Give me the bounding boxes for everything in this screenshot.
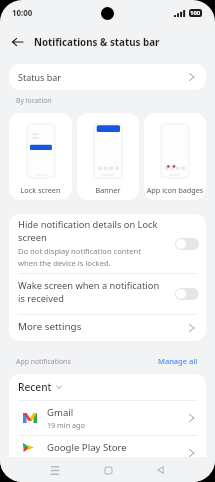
button[interactable]: Wake screen when a notification is recei… [9, 274, 206, 314]
button[interactable]: Home [92, 460, 125, 480]
button[interactable] [175, 238, 199, 250]
button[interactable]: Hide notification details on Lock screen [9, 214, 206, 273]
staticText: Status bar [18, 71, 62, 83]
button[interactable]: Recents [38, 460, 71, 480]
button[interactable]: Gmail [9, 401, 206, 435]
staticText: By location [16, 96, 52, 105]
staticText: App icon badges [144, 185, 206, 195]
button[interactable]: Lock screen [9, 113, 72, 200]
staticText: 19 min ago [47, 420, 85, 430]
button[interactable]: Google Play Store [9, 436, 206, 457]
staticText: Do not display notification content when… [18, 246, 160, 269]
staticText: Banner [77, 185, 139, 195]
staticText: Google Play Store [47, 441, 127, 454]
button[interactable]: Banner [77, 113, 139, 200]
staticText: Wake screen when a notification is recei… [18, 279, 160, 305]
button[interactable]: App icon badges [144, 113, 206, 200]
button[interactable]: Recent [9, 374, 206, 400]
staticText: More settings [18, 320, 82, 333]
button[interactable]: More settings [9, 315, 206, 341]
staticText: 100 [190, 9, 201, 17]
staticText: Gmail [47, 406, 74, 419]
staticText: 10:00 [12, 8, 33, 19]
button[interactable]: Back [3, 28, 31, 56]
staticText: Notifications & status bar [34, 36, 160, 49]
staticText: Lock screen [9, 185, 72, 195]
button[interactable]: Manage all [146, 356, 215, 366]
button[interactable]: Back [144, 460, 177, 480]
staticText: Manage all [158, 356, 198, 366]
button[interactable]: Status bar [9, 64, 206, 90]
staticText: Recent [18, 380, 52, 394]
button[interactable] [175, 288, 199, 300]
staticText: App notifications [16, 357, 71, 366]
staticText: Hide notification details on Lock screen [18, 218, 160, 244]
